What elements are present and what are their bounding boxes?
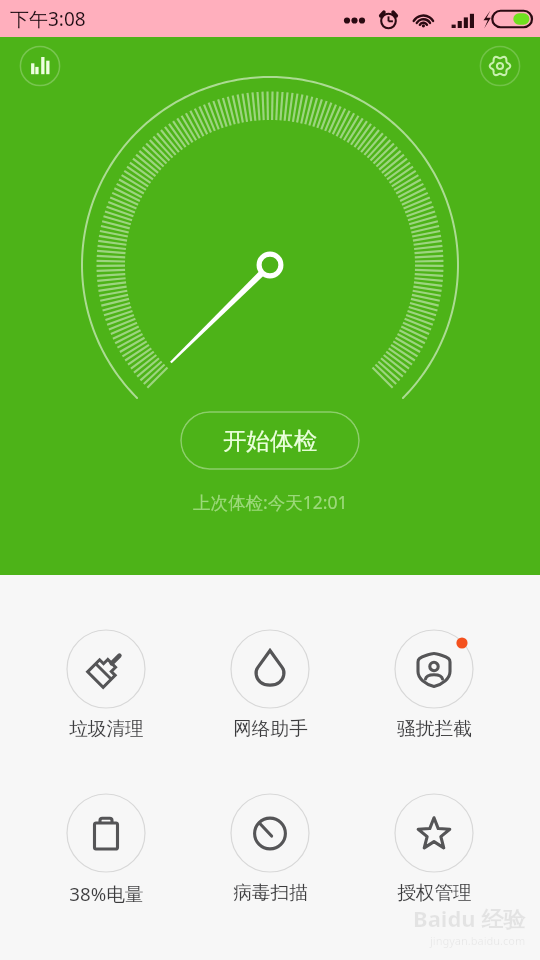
button[interactable]: 授权管理 [352,791,516,905]
button[interactable]: 38%电量 [24,791,188,907]
button[interactable]: 网络助手 [188,627,352,741]
staticText: Baidu 经验 [413,903,526,933]
button[interactable]: Settings [476,42,524,90]
button[interactable]: 病毒扫描 [188,791,352,905]
button[interactable]: 开始体检 [180,411,360,470]
staticText: 38%电量 [69,881,144,907]
staticText: jingyan.baidu.com [430,933,526,948]
staticText: 开始体检 [223,426,317,456]
staticText: 网络助手 [233,717,308,741]
staticText: 骚扰拦截 [397,717,472,741]
button[interactable]: Statistics [16,42,64,90]
staticText: 上次体检:今天12:01 [193,490,348,514]
button[interactable]: 垃圾清理 [24,627,188,741]
staticText: 垃圾清理 [69,717,144,741]
staticText: 病毒扫描 [233,881,308,905]
staticText: 下午3:08 [10,6,86,32]
staticText: 授权管理 [397,881,472,905]
button[interactable]: 骚扰拦截 [352,627,516,741]
